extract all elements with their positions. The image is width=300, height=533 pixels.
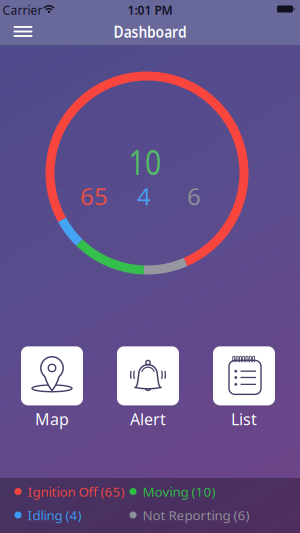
staticText: Alert: [130, 408, 166, 430]
staticText: Map: [35, 408, 69, 430]
button[interactable]: Map: [21, 346, 83, 430]
staticText: Ignition Off (65): [27, 483, 124, 500]
staticText: Dashboard: [107, 21, 192, 42]
staticText: List: [231, 408, 257, 430]
button[interactable]: Menu: [8, 19, 38, 43]
staticText: 65: [80, 180, 108, 212]
staticText: 1:01 PM: [127, 2, 172, 18]
staticText: 10: [125, 138, 165, 184]
button[interactable]: List: [213, 346, 275, 430]
staticText: 6: [187, 180, 201, 212]
staticText: Idling (4): [27, 506, 81, 524]
button[interactable]: Alert: [117, 346, 179, 430]
staticText: 4: [137, 180, 151, 212]
staticText: Not Reporting (6): [142, 506, 249, 524]
staticText: Carrier: [2, 2, 42, 18]
staticText: Moving (10): [142, 483, 215, 500]
